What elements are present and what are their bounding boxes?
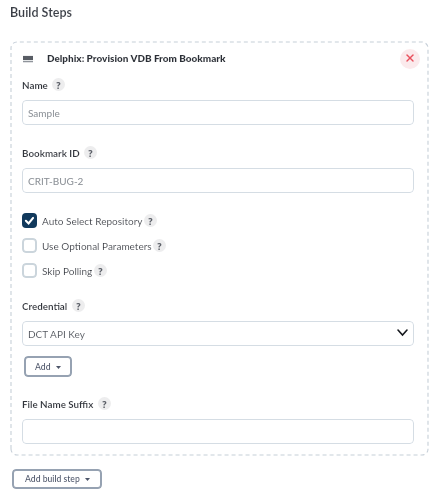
staticText: ? [88,147,93,159]
staticText: Name [22,79,48,91]
staticText: ? [102,398,107,410]
button[interactable]: Help [72,299,85,312]
button[interactable]: CRIT-BUG-2 [22,168,414,193]
staticText: Auto Select Repository [42,215,143,227]
staticText: Build Steps [10,5,73,20]
staticText: ? [157,240,162,252]
staticText: ? [148,215,153,227]
staticText: Delphix: Provision VDB From Bookmark [47,52,226,64]
button[interactable]: Sample [22,100,414,125]
button[interactable] [22,419,414,444]
staticText: Use Optional Parameters [42,240,152,252]
button[interactable]: Auto Select Repository [22,213,157,228]
button[interactable]: Add credential [24,356,72,377]
button[interactable]: Credential selector [22,321,414,346]
staticText: ? [56,79,61,91]
button[interactable]: Add build step [12,469,102,489]
staticText: CRIT-BUG-2 [28,175,84,187]
staticText: ? [98,265,103,277]
staticText: Add [35,362,51,372]
button[interactable]: Help [52,78,65,91]
button[interactable]: Help [94,264,107,277]
staticText: ? [76,300,81,312]
button[interactable]: Help [144,214,157,227]
staticText: Skip Polling [42,265,93,277]
button[interactable]: Help [153,239,166,252]
button[interactable]: Help [84,146,97,159]
button[interactable]: Use Optional Parameters [22,238,166,253]
staticText: Credential [22,300,68,312]
staticText: Add build step [25,474,80,484]
button[interactable]: Help [98,397,111,410]
button[interactable]: Drag handle [21,52,35,66]
staticText: DCT API Key [28,328,85,340]
button[interactable]: Skip Polling [22,263,107,278]
staticText: Bookmark ID [22,147,80,159]
staticText: File Name Suffix [22,398,94,410]
button[interactable]: Remove build step [400,49,420,69]
staticText: Sample [28,107,60,119]
